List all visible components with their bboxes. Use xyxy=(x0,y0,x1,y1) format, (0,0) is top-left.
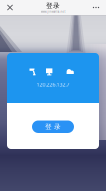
button[interactable]: Close xyxy=(0,0,20,15)
staticText: www.jinwanlai.net xyxy=(40,10,65,13)
staticText: 登录 xyxy=(46,2,60,10)
button[interactable]: 登 录 xyxy=(32,120,74,133)
staticText: 登 录 xyxy=(45,123,61,131)
button[interactable]: More xyxy=(86,0,106,15)
staticText: 120.226.132.7 xyxy=(36,81,69,88)
